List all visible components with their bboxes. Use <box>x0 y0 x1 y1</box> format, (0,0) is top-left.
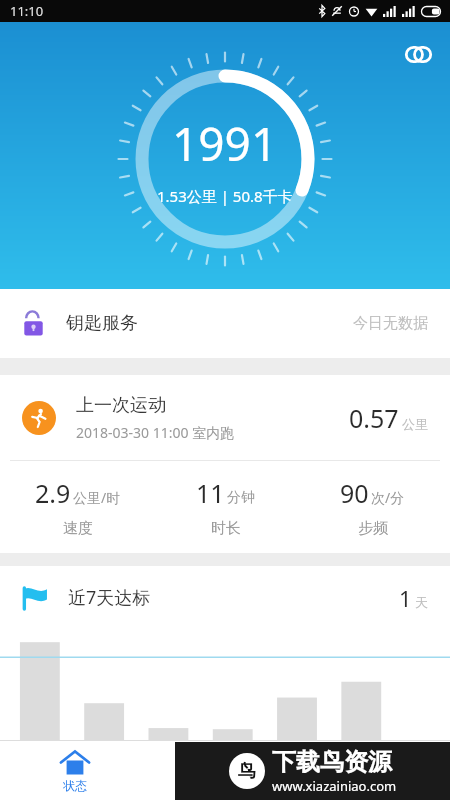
staticText: 步频 <box>358 519 388 538</box>
button[interactable]: 2.9 <box>4 461 152 553</box>
staticText: 1.53公里 | 50.8千卡 <box>157 186 293 206</box>
staticText: 11:10 <box>10 2 44 20</box>
button[interactable]: 状态 <box>0 742 150 800</box>
button[interactable]: 90 <box>299 461 446 553</box>
staticText: 公里/时 <box>73 488 121 507</box>
staticText: 上一次运动 <box>76 394 166 417</box>
staticText: 近7天达标 <box>68 585 151 610</box>
staticText: 速度 <box>63 519 93 538</box>
staticText: 时长 <box>211 519 241 538</box>
staticText: 钥匙服务 <box>66 312 138 335</box>
staticText: 公里 <box>402 416 428 432</box>
button[interactable]: 11 <box>152 461 299 553</box>
staticText: 鸟 <box>238 760 256 783</box>
staticText: 1991 <box>172 112 278 175</box>
button[interactable]: 钥匙服务 <box>0 289 450 358</box>
staticText: 2018-03-30 11:00 室内跑 <box>76 423 235 442</box>
staticText: 11 <box>196 476 225 510</box>
staticText: 分钟 <box>227 489 255 507</box>
staticText: 次/分 <box>371 488 405 507</box>
button[interactable]: Link device <box>398 34 438 74</box>
button[interactable]: 近7天达标 <box>0 566 450 629</box>
staticText: 今日无数据 <box>353 314 428 333</box>
staticText: 1 <box>399 583 412 613</box>
staticText: www.xiazainiao.com <box>272 777 397 795</box>
staticText: 下载鸟资源 <box>272 747 392 777</box>
staticText: 2.9 <box>35 476 71 510</box>
button[interactable]: 上一次运动 <box>0 375 450 460</box>
staticText: 0.57 <box>349 401 399 435</box>
staticText: 状态 <box>63 778 87 793</box>
staticText: 天 <box>415 594 428 610</box>
staticText: 90 <box>340 476 369 510</box>
